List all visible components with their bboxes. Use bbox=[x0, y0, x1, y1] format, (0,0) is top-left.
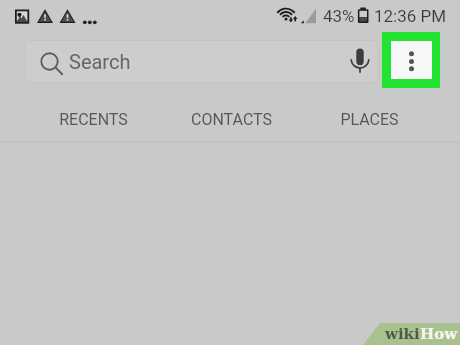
button[interactable]: Voice search bbox=[346, 42, 376, 76]
button[interactable]: CONTACTS bbox=[162, 100, 300, 138]
staticText: 12:36 PM bbox=[374, 6, 447, 26]
button[interactable]: Search bbox=[25, 40, 378, 83]
staticText: 43% bbox=[323, 6, 355, 26]
staticText: How bbox=[420, 325, 458, 343]
button[interactable]: PLACES bbox=[300, 100, 438, 138]
staticText: RECENTS bbox=[59, 110, 128, 129]
staticText: Search bbox=[69, 50, 131, 73]
staticText: wiki bbox=[385, 325, 420, 343]
button[interactable]: RECENTS bbox=[25, 100, 162, 138]
staticText: PLACES bbox=[340, 110, 399, 129]
staticText: CONTACTS bbox=[191, 110, 272, 129]
button[interactable]: More options bbox=[382, 32, 440, 88]
